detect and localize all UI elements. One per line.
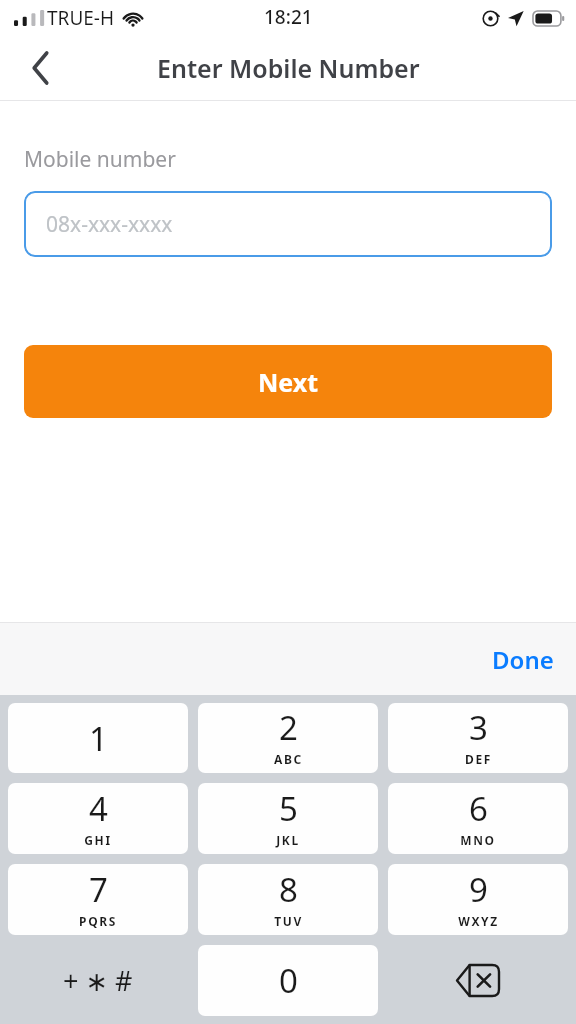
button[interactable]: Next: [24, 345, 552, 418]
button[interactable]: 3: [388, 703, 568, 773]
staticText: 4: [89, 786, 108, 831]
staticText: PQRS: [79, 913, 117, 929]
button[interactable]: 8: [198, 864, 378, 935]
staticText: 3: [469, 705, 488, 750]
button[interactable]: 1: [8, 703, 188, 773]
staticText: 8: [279, 867, 298, 912]
staticText: 18:21: [264, 4, 313, 30]
staticText: 6: [469, 786, 488, 831]
button[interactable]: 0: [198, 945, 378, 1016]
button[interactable]: Back: [18, 45, 64, 91]
staticText: 0: [279, 958, 298, 1003]
button[interactable]: 2: [198, 703, 378, 773]
staticText: ABC: [274, 751, 303, 767]
staticText: 08x-xxx-xxxx: [46, 210, 173, 239]
staticText: Next: [258, 365, 319, 399]
staticText: TUV: [274, 913, 303, 929]
button[interactable]: 08x-xxx-xxxx: [24, 191, 552, 257]
staticText: 9: [469, 867, 488, 912]
staticText: GHI: [84, 832, 112, 848]
staticText: Mobile number: [24, 145, 176, 174]
staticText: TRUE-H: [47, 5, 115, 31]
staticText: Done: [492, 643, 554, 676]
button[interactable]: 9: [388, 864, 568, 935]
button[interactable]: Done: [470, 635, 576, 684]
button[interactable]: 7: [8, 864, 188, 935]
staticText: WXYZ: [458, 913, 499, 929]
staticText: + ∗ #: [63, 962, 133, 999]
staticText: 2: [279, 705, 298, 750]
staticText: 7: [89, 867, 108, 912]
staticText: 1: [89, 716, 108, 761]
staticText: MNO: [460, 832, 496, 848]
staticText: Enter Mobile Number: [157, 51, 420, 85]
button[interactable]: + ∗ #: [8, 945, 188, 1016]
button[interactable]: 5: [198, 783, 378, 854]
button[interactable]: Delete: [388, 945, 568, 1016]
button[interactable]: 4: [8, 783, 188, 854]
staticText: JKL: [276, 832, 300, 848]
staticText: 5: [279, 786, 298, 831]
staticText: DEF: [465, 751, 492, 767]
button[interactable]: 6: [388, 783, 568, 854]
